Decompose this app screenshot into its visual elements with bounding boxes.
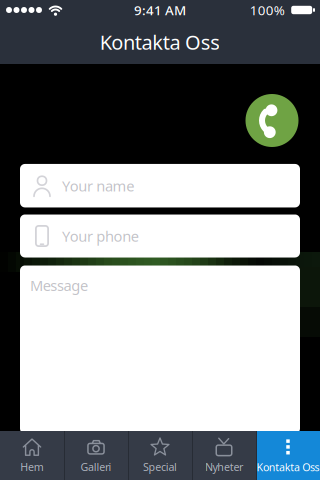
button[interactable]: Message (20, 265, 300, 433)
staticText: Kontakta Oss (256, 460, 320, 474)
button[interactable]: Special (128, 431, 192, 480)
staticText: Message (30, 275, 88, 295)
button[interactable]: Call (245, 94, 298, 147)
button[interactable]: Your phone (20, 214, 300, 257)
button[interactable]: Hem (0, 431, 64, 480)
button[interactable]: Your name (20, 164, 300, 207)
staticText: 9:41 AM (134, 1, 186, 19)
staticText: Special (143, 460, 177, 474)
button[interactable]: Nyheter (192, 431, 256, 480)
staticText: 100% (250, 1, 285, 19)
staticText: Nyheter (205, 460, 243, 474)
staticText: Galleri (80, 460, 112, 474)
staticText: Hem (20, 460, 44, 474)
staticText: Kontakta Oss (100, 29, 220, 55)
button[interactable]: Kontakta Oss (256, 431, 320, 480)
button[interactable]: Galleri (64, 431, 128, 480)
staticText: Your phone (62, 226, 139, 246)
staticText: Your name (62, 176, 134, 195)
